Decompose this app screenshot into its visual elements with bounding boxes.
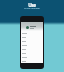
button[interactable] [21,43,43,47]
button[interactable] [21,55,43,59]
button[interactable] [21,35,43,39]
staticText: in your language [24,7,40,10]
button[interactable] [21,59,43,63]
button[interactable] [21,31,43,35]
button[interactable] [21,51,43,55]
button[interactable] [21,39,43,43]
staticText: Use [28,2,36,8]
button[interactable] [21,47,43,51]
